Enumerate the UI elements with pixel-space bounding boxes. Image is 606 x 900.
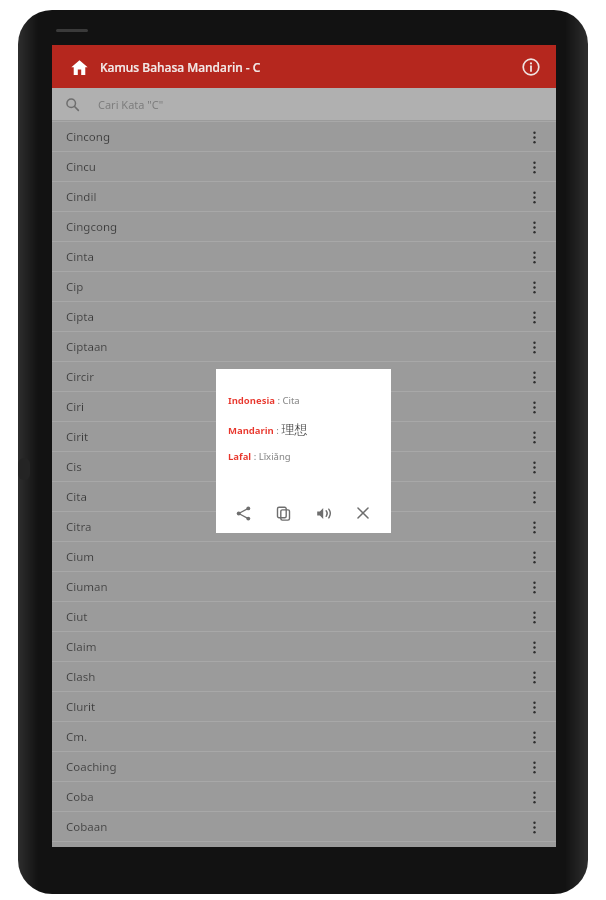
button[interactable]: Ciri xyxy=(52,392,556,421)
staticText: Mandarin : 理想 xyxy=(228,421,308,437)
button[interactable]: Cari Kata "C" xyxy=(52,88,556,120)
button[interactable]: More options xyxy=(524,154,544,180)
button[interactable]: Copy xyxy=(263,493,303,533)
button[interactable]: More options xyxy=(524,304,544,330)
button[interactable]: More options xyxy=(524,244,544,270)
staticText: Indonesia : Cita xyxy=(228,394,300,407)
button[interactable]: More options xyxy=(524,424,544,450)
button[interactable]: Citra xyxy=(52,512,556,541)
staticText: Cm. xyxy=(66,729,88,745)
button[interactable]: Cobaan xyxy=(52,812,556,841)
button[interactable]: More options xyxy=(524,544,544,570)
button[interactable]: Clash xyxy=(52,662,556,691)
staticText: Cindil xyxy=(66,189,97,205)
button[interactable]: More options xyxy=(524,724,544,750)
button[interactable]: More options xyxy=(524,394,544,420)
button[interactable]: More options xyxy=(524,184,544,210)
button[interactable]: More options xyxy=(524,754,544,780)
staticText: Cobaan xyxy=(66,819,108,835)
staticText: Clash xyxy=(66,669,96,685)
button[interactable]: Close xyxy=(343,493,383,533)
staticText: Cingcong xyxy=(66,219,118,235)
button[interactable]: Cirit xyxy=(52,422,556,451)
staticText: Coba xyxy=(66,789,94,805)
button[interactable]: Ciptaan xyxy=(52,332,556,361)
button[interactable]: Cipta xyxy=(52,302,556,331)
button[interactable]: Claim xyxy=(52,632,556,661)
staticText: Ciptaan xyxy=(66,339,108,355)
button[interactable]: Circir xyxy=(52,362,556,391)
button[interactable]: Ciut xyxy=(52,602,556,631)
button[interactable]: More options xyxy=(524,514,544,540)
button[interactable]: Cinta xyxy=(52,242,556,271)
button[interactable]: Coba xyxy=(52,782,556,811)
button[interactable]: Play sound xyxy=(303,493,343,533)
button[interactable]: Cis xyxy=(52,452,556,481)
staticText: Kamus Bahasa Mandarin - C xyxy=(100,59,261,75)
staticText: Cinta xyxy=(66,249,94,265)
staticText: Claim xyxy=(66,639,97,655)
staticText: Cita xyxy=(66,489,87,505)
button[interactable]: Home xyxy=(60,48,98,86)
button[interactable]: More options xyxy=(524,604,544,630)
button[interactable]: More options xyxy=(524,274,544,300)
button[interactable]: Clurit xyxy=(52,692,556,721)
button[interactable]: More options xyxy=(524,634,544,660)
staticText: Ciuman xyxy=(66,579,108,595)
button[interactable]: Cindil xyxy=(52,182,556,211)
staticText: Ciri xyxy=(66,399,84,415)
button[interactable]: More options xyxy=(524,364,544,390)
button[interactable]: More options xyxy=(524,484,544,510)
button[interactable]: Share xyxy=(224,493,263,533)
button[interactable]: Cium xyxy=(52,542,556,571)
staticText: Cari Kata "C" xyxy=(98,97,164,112)
button[interactable]: More options xyxy=(524,694,544,720)
staticText: Cincong xyxy=(66,129,110,145)
button[interactable]: More options xyxy=(524,454,544,480)
button[interactable]: More options xyxy=(524,574,544,600)
staticText: Circir xyxy=(66,369,94,385)
button[interactable]: Info xyxy=(514,50,548,84)
button[interactable]: More options xyxy=(524,214,544,240)
button[interactable]: More options xyxy=(524,124,544,150)
button[interactable]: More options xyxy=(524,334,544,360)
button[interactable]: More options xyxy=(524,784,544,810)
button[interactable]: Cip xyxy=(52,272,556,301)
staticText: Citra xyxy=(66,519,92,535)
staticText: Cis xyxy=(66,459,82,475)
staticText: Cium xyxy=(66,549,95,565)
button[interactable]: Cita xyxy=(52,482,556,511)
staticText: Cincu xyxy=(66,159,96,175)
staticText: Coaching xyxy=(66,759,117,775)
staticText: Cip xyxy=(66,279,84,295)
staticText: Cirit xyxy=(66,429,89,445)
button[interactable]: More options xyxy=(524,814,544,840)
staticText: Lafal : Lǐxiǎng xyxy=(228,450,291,463)
button[interactable]: Cincong xyxy=(52,122,556,151)
staticText: Cipta xyxy=(66,309,94,325)
button[interactable]: More options xyxy=(524,664,544,690)
button[interactable]: Cincu xyxy=(52,152,556,181)
button[interactable]: Cm. xyxy=(52,722,556,751)
button[interactable]: Cingcong xyxy=(52,212,556,241)
button[interactable]: Coaching xyxy=(52,752,556,781)
staticText: Ciut xyxy=(66,609,88,625)
staticText: Clurit xyxy=(66,699,96,715)
button[interactable]: Ciuman xyxy=(52,572,556,601)
